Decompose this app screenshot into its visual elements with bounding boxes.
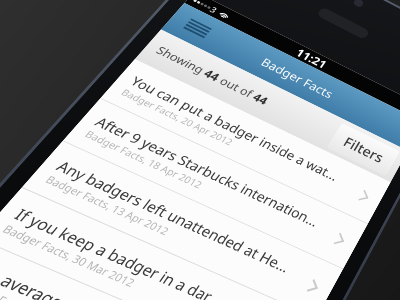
staticText: Badger Facts, 18 Apr 2012 — [13, 199, 142, 213]
staticText: 44 — [70, 78, 86, 96]
staticText: out of — [86, 78, 131, 96]
staticText: 11:21 — [141, 0, 180, 20]
staticText: Any badgers left unattended at He... — [13, 236, 268, 256]
staticText: You can put a badger inside a wat... — [13, 122, 263, 142]
staticText: After 9 years Starbucks internation... — [13, 179, 270, 199]
button[interactable]: After 9 years Starbucks internation... — [0, 167, 320, 224]
staticText: Badger Facts, 20 Apr 2012 — [13, 142, 142, 156]
staticText: Filters — [248, 76, 298, 99]
button[interactable]: Filters — [234, 69, 312, 106]
button[interactable]: If you keep a badger in a dar... — [0, 281, 320, 300]
staticText: If you keep a badger in a dar... — [13, 293, 225, 300]
button[interactable]: You can put a badger inside a wat... — [0, 110, 320, 167]
staticText: Badger Facts — [114, 32, 206, 52]
staticText: 44 — [131, 78, 147, 96]
button[interactable]: Any badgers left unattended at He... — [0, 224, 320, 281]
staticText: Badger Facts, 13 Apr 2012 — [13, 256, 142, 270]
